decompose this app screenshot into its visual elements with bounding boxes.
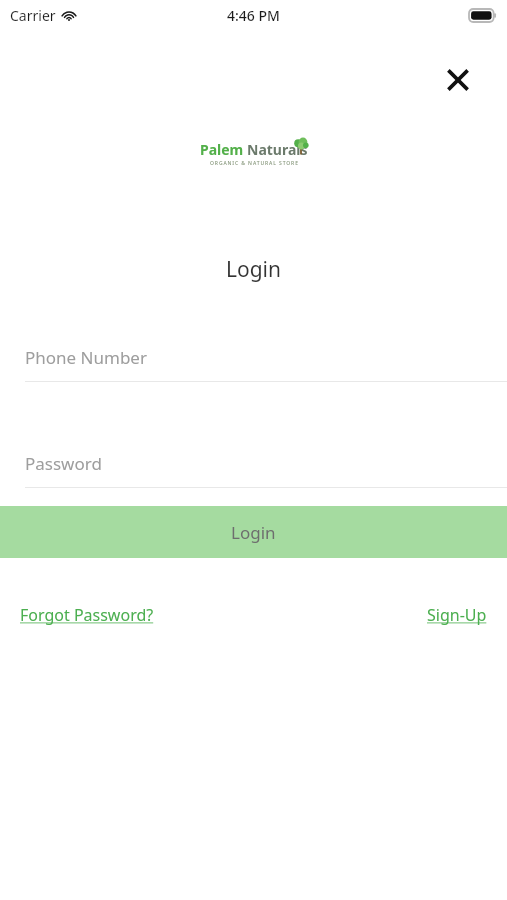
button[interactable]: Phone Number [0, 340, 507, 374]
button[interactable]: Sign-Up [427, 600, 487, 630]
staticText: Palem [200, 140, 247, 159]
staticText: Naturals [247, 140, 308, 159]
staticText: Forgot Password? [20, 604, 154, 626]
button[interactable]: Login [0, 506, 507, 558]
button[interactable]: Password [0, 446, 507, 480]
button[interactable]: Forgot Password? [20, 600, 154, 630]
staticText: 4:46 PM [227, 6, 280, 25]
staticText: Phone Number [25, 346, 147, 369]
staticText: Password [25, 452, 102, 475]
staticText: Carrier [10, 6, 56, 25]
staticText: ORGANIC & NATURAL STORE [210, 160, 299, 167]
staticText: Login [226, 255, 282, 284]
staticText: Login [231, 521, 276, 544]
staticText: Sign-Up [427, 604, 487, 626]
button[interactable]: Close [435, 57, 481, 103]
